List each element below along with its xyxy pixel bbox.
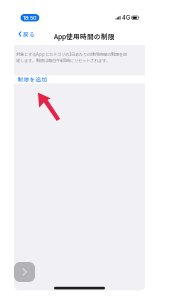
button[interactable]: 制限を追加 [14, 75, 145, 83]
button[interactable]: Forward [14, 262, 35, 282]
staticText: App使用時間の制限 [54, 32, 115, 41]
staticText: 18:50 [23, 14, 37, 21]
staticText: 4G [122, 14, 130, 21]
staticText: 戻る [23, 30, 35, 38]
staticText: 対象とするAppとカテゴリの1日あたりの使用時間の制限を設定します。制限は毎日午… [16, 51, 127, 63]
staticText: 制限を追加 [17, 75, 47, 83]
button[interactable]: 戻る [15, 27, 38, 40]
